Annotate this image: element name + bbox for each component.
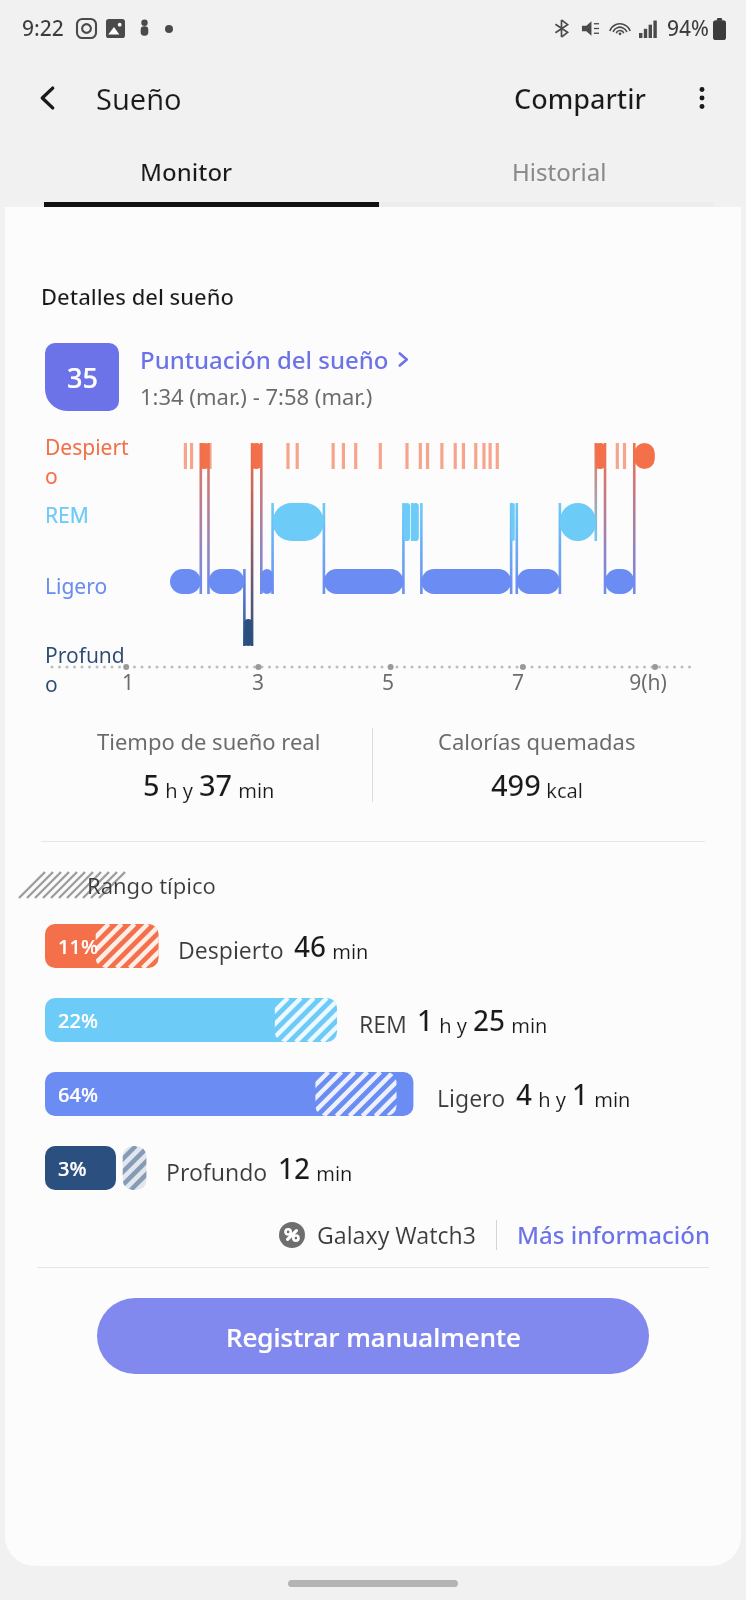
button[interactable]: Más información (517, 1218, 711, 1251)
staticText: 9(h) (583, 668, 713, 697)
staticText: Despierto (178, 934, 284, 965)
staticText: 46 (294, 927, 327, 965)
staticText: Ligero (45, 572, 108, 601)
staticText: Tiempo de sueño real (97, 726, 321, 756)
staticText: Galaxy Watch3 (317, 1219, 476, 1250)
staticText: 5 (323, 668, 453, 697)
staticText: Profundo (166, 1156, 268, 1187)
staticText: 11% (58, 933, 98, 960)
staticText: Detalles del sueño (41, 281, 234, 311)
button[interactable]: Puntuación del sueño (140, 343, 411, 376)
staticText: Puntuación del sueño (140, 343, 389, 376)
staticText: o (45, 670, 58, 699)
staticText: Historial (512, 155, 607, 188)
button[interactable]: Registrar manualmente (97, 1298, 649, 1374)
staticText: min (327, 938, 369, 965)
staticText: Sueño (96, 79, 182, 118)
staticText: 1 (572, 1075, 589, 1113)
staticText: 9:22 (22, 14, 64, 43)
staticText: min (311, 1160, 353, 1187)
staticText: Más información (517, 1218, 711, 1251)
staticText: Rango típico (87, 870, 216, 900)
staticText: min (506, 1012, 548, 1039)
staticText: 1:34 (mar.) - 7:58 (mar.) (140, 381, 373, 411)
staticText: Compartir (514, 80, 646, 117)
button[interactable]: More options (676, 72, 728, 124)
staticText: 64% (58, 1081, 98, 1108)
staticText: 1 (63, 668, 193, 697)
staticText: 22% (58, 1007, 98, 1034)
staticText: Ligero (437, 1082, 506, 1113)
staticText: Despiert (45, 433, 129, 462)
staticText: 35 (67, 359, 98, 396)
staticText: Calorías quemadas (438, 726, 636, 756)
staticText: h y (533, 1086, 572, 1113)
button[interactable]: Back (22, 72, 74, 124)
staticText: Profund (45, 641, 125, 670)
staticText: 1 (417, 1001, 434, 1039)
staticText: REM (45, 501, 89, 530)
staticText: min (233, 777, 275, 804)
staticText: Monitor (140, 155, 233, 188)
staticText: 25 (473, 1001, 506, 1039)
staticText: h y (434, 1012, 473, 1039)
staticText: REM (359, 1008, 407, 1039)
staticText: o (45, 462, 58, 491)
staticText: 5 (143, 765, 160, 804)
staticText: 4 (516, 1075, 533, 1113)
button[interactable]: Compartir (514, 80, 646, 117)
staticText: kcal (541, 777, 583, 804)
staticText: Registrar manualmente (226, 1319, 521, 1354)
staticText: 3 (193, 668, 323, 697)
staticText: min (589, 1086, 631, 1113)
button[interactable]: Monitor (0, 140, 373, 202)
staticText: 94% (667, 14, 709, 43)
button[interactable]: Historial (373, 140, 746, 202)
staticText: h y (160, 777, 199, 804)
staticText: 3% (58, 1155, 87, 1182)
staticText: 12 (278, 1149, 311, 1187)
staticText: 7 (453, 668, 583, 697)
staticText: 499 (491, 765, 541, 804)
staticText: 37 (199, 765, 233, 804)
